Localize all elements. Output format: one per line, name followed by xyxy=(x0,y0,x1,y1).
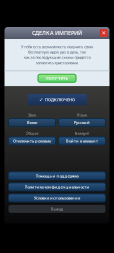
button[interactable]: Войти в аккаунт xyxy=(58,137,105,145)
button[interactable]: Выход xyxy=(8,205,105,213)
button[interactable]: ПОЛУЧИТЬ xyxy=(38,74,76,82)
staticText: ✕ xyxy=(101,30,105,36)
staticText: Выход xyxy=(50,206,63,211)
button[interactable]: Политика конфиденциальности xyxy=(8,183,105,191)
staticText: Политика конфиденциальности xyxy=(24,184,89,189)
staticText: Звук xyxy=(28,112,36,117)
staticText: Русский xyxy=(74,120,90,125)
button[interactable]: Русский xyxy=(58,119,105,127)
staticText: Общее xyxy=(25,131,38,136)
staticText: Условия использования xyxy=(34,195,80,200)
button[interactable]: Условия использования xyxy=(8,194,105,202)
button[interactable]: Close xyxy=(99,29,107,37)
staticText: ✓ xyxy=(39,97,43,103)
staticText: Язык xyxy=(77,112,87,117)
staticText: ПОЛУЧИТЬ xyxy=(45,76,68,81)
staticText: как за последующие схемы придётся xyxy=(23,55,90,60)
staticText: бесплатную идею раз в день, так xyxy=(28,49,86,55)
button[interactable]: Помощь и поддержка xyxy=(8,172,105,180)
staticText: Аккаунт xyxy=(74,131,89,136)
button[interactable]: Выкл xyxy=(8,119,55,127)
staticText: СДЕЛКА ИМПЕРИЙ xyxy=(32,29,82,37)
button[interactable]: ✓ xyxy=(27,94,86,105)
staticText: заплатить кристаллами. xyxy=(35,60,78,65)
staticText: У тебя есть возможность получить свою xyxy=(21,44,93,49)
staticText: Отключить рекламу xyxy=(13,138,51,143)
staticText: ПОДКЛЮЧЕНО xyxy=(45,97,75,102)
staticText: Выкл xyxy=(27,120,37,125)
staticText: Войти в аккаунт xyxy=(66,138,98,143)
button[interactable]: Отключить рекламу xyxy=(8,137,55,145)
staticText: Помощь и поддержка xyxy=(35,173,78,178)
